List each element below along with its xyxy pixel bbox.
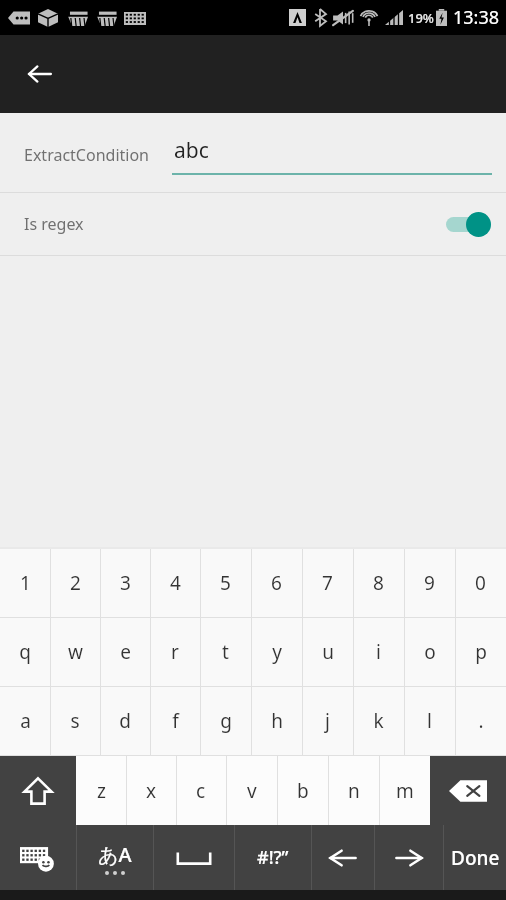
staticText: g bbox=[220, 708, 232, 734]
button[interactable]: Shift bbox=[0, 756, 76, 825]
staticText: Done bbox=[451, 845, 500, 871]
button[interactable]: あA bbox=[77, 825, 153, 890]
button[interactable]: q bbox=[0, 618, 50, 686]
button[interactable]: . bbox=[455, 687, 506, 755]
button[interactable]: o bbox=[404, 618, 455, 686]
button[interactable]: r bbox=[150, 618, 200, 686]
staticText: t bbox=[222, 639, 229, 665]
staticText: u bbox=[322, 639, 334, 665]
button[interactable]: 6 bbox=[251, 549, 302, 617]
staticText: 3 bbox=[120, 570, 131, 596]
button[interactable]: Back bbox=[16, 50, 64, 98]
staticText: j bbox=[325, 708, 330, 734]
button[interactable]: Backspace bbox=[430, 756, 506, 825]
button[interactable]: i bbox=[353, 618, 404, 686]
staticText: あA bbox=[98, 841, 132, 868]
button[interactable]: 7 bbox=[302, 549, 353, 617]
staticText: d bbox=[119, 708, 131, 734]
button[interactable]: g bbox=[200, 687, 251, 755]
button[interactable]: ExtractCondition bbox=[0, 113, 506, 192]
button[interactable]: #!?” bbox=[235, 825, 311, 890]
staticText: 19% bbox=[408, 9, 434, 27]
button[interactable]: Is regex bbox=[0, 193, 506, 255]
button[interactable]: p bbox=[455, 618, 506, 686]
button[interactable]: m bbox=[379, 756, 430, 825]
staticText: k bbox=[373, 708, 384, 734]
button[interactable]: 2 bbox=[50, 549, 100, 617]
staticText: e bbox=[120, 639, 131, 665]
staticText: z bbox=[97, 778, 106, 804]
staticText: m bbox=[396, 778, 414, 804]
staticText: c bbox=[196, 778, 206, 804]
button[interactable]: 8 bbox=[353, 549, 404, 617]
button[interactable]: x bbox=[126, 756, 176, 825]
button[interactable]: Move cursor left bbox=[312, 825, 374, 890]
button[interactable]: Move cursor right bbox=[375, 825, 443, 890]
staticText: h bbox=[271, 708, 283, 734]
button[interactable]: j bbox=[302, 687, 353, 755]
staticText: 5 bbox=[220, 570, 231, 596]
staticText: r bbox=[171, 639, 179, 665]
staticText: 9 bbox=[424, 570, 435, 596]
staticText: p bbox=[475, 639, 487, 665]
button[interactable]: Done bbox=[444, 825, 506, 890]
staticText: y bbox=[272, 639, 282, 665]
staticText: n bbox=[348, 778, 360, 804]
staticText: 4 bbox=[170, 570, 181, 596]
button[interactable]: v bbox=[226, 756, 277, 825]
button[interactable]: f bbox=[150, 687, 200, 755]
button[interactable]: n bbox=[328, 756, 379, 825]
staticText: ExtractCondition bbox=[24, 144, 149, 166]
button[interactable]: 0 bbox=[455, 549, 506, 617]
staticText: o bbox=[424, 639, 436, 665]
button[interactable]: c bbox=[176, 756, 226, 825]
staticText: f bbox=[172, 708, 179, 734]
staticText: 0 bbox=[475, 570, 486, 596]
button[interactable]: k bbox=[353, 687, 404, 755]
staticText: a bbox=[20, 708, 31, 734]
button[interactable]: u bbox=[302, 618, 353, 686]
staticText: 6 bbox=[271, 570, 282, 596]
staticText: 13:38 bbox=[453, 5, 500, 30]
button[interactable]: Switch keyboard bbox=[0, 825, 76, 890]
staticText: i bbox=[376, 639, 381, 665]
staticText: #!?” bbox=[257, 845, 289, 870]
staticText: 8 bbox=[373, 570, 384, 596]
button[interactable]: Space bbox=[154, 825, 234, 890]
staticText: l bbox=[427, 708, 432, 734]
staticText: abc bbox=[174, 136, 209, 165]
staticText: v bbox=[247, 778, 257, 804]
button[interactable]: h bbox=[251, 687, 302, 755]
staticText: x bbox=[146, 778, 157, 804]
button[interactable]: d bbox=[100, 687, 150, 755]
button[interactable]: t bbox=[200, 618, 251, 686]
staticText: 2 bbox=[70, 570, 81, 596]
staticText: w bbox=[68, 639, 83, 665]
button[interactable]: 4 bbox=[150, 549, 200, 617]
staticText: 7 bbox=[322, 570, 333, 596]
button[interactable]: 1 bbox=[0, 549, 50, 617]
button[interactable]: a bbox=[0, 687, 50, 755]
button[interactable]: l bbox=[404, 687, 455, 755]
staticText: s bbox=[70, 708, 80, 734]
button[interactable]: b bbox=[277, 756, 328, 825]
button[interactable]: y bbox=[251, 618, 302, 686]
button[interactable]: 5 bbox=[200, 549, 251, 617]
button[interactable]: e bbox=[100, 618, 150, 686]
button[interactable]: z bbox=[76, 756, 126, 825]
staticText: b bbox=[297, 778, 309, 804]
button[interactable]: w bbox=[50, 618, 100, 686]
staticText: Is regex bbox=[24, 213, 84, 235]
staticText: 1 bbox=[20, 570, 31, 596]
button[interactable]: 3 bbox=[100, 549, 150, 617]
button[interactable]: s bbox=[50, 687, 100, 755]
staticText: q bbox=[19, 639, 31, 665]
button[interactable]: 9 bbox=[404, 549, 455, 617]
staticText: . bbox=[478, 708, 484, 734]
